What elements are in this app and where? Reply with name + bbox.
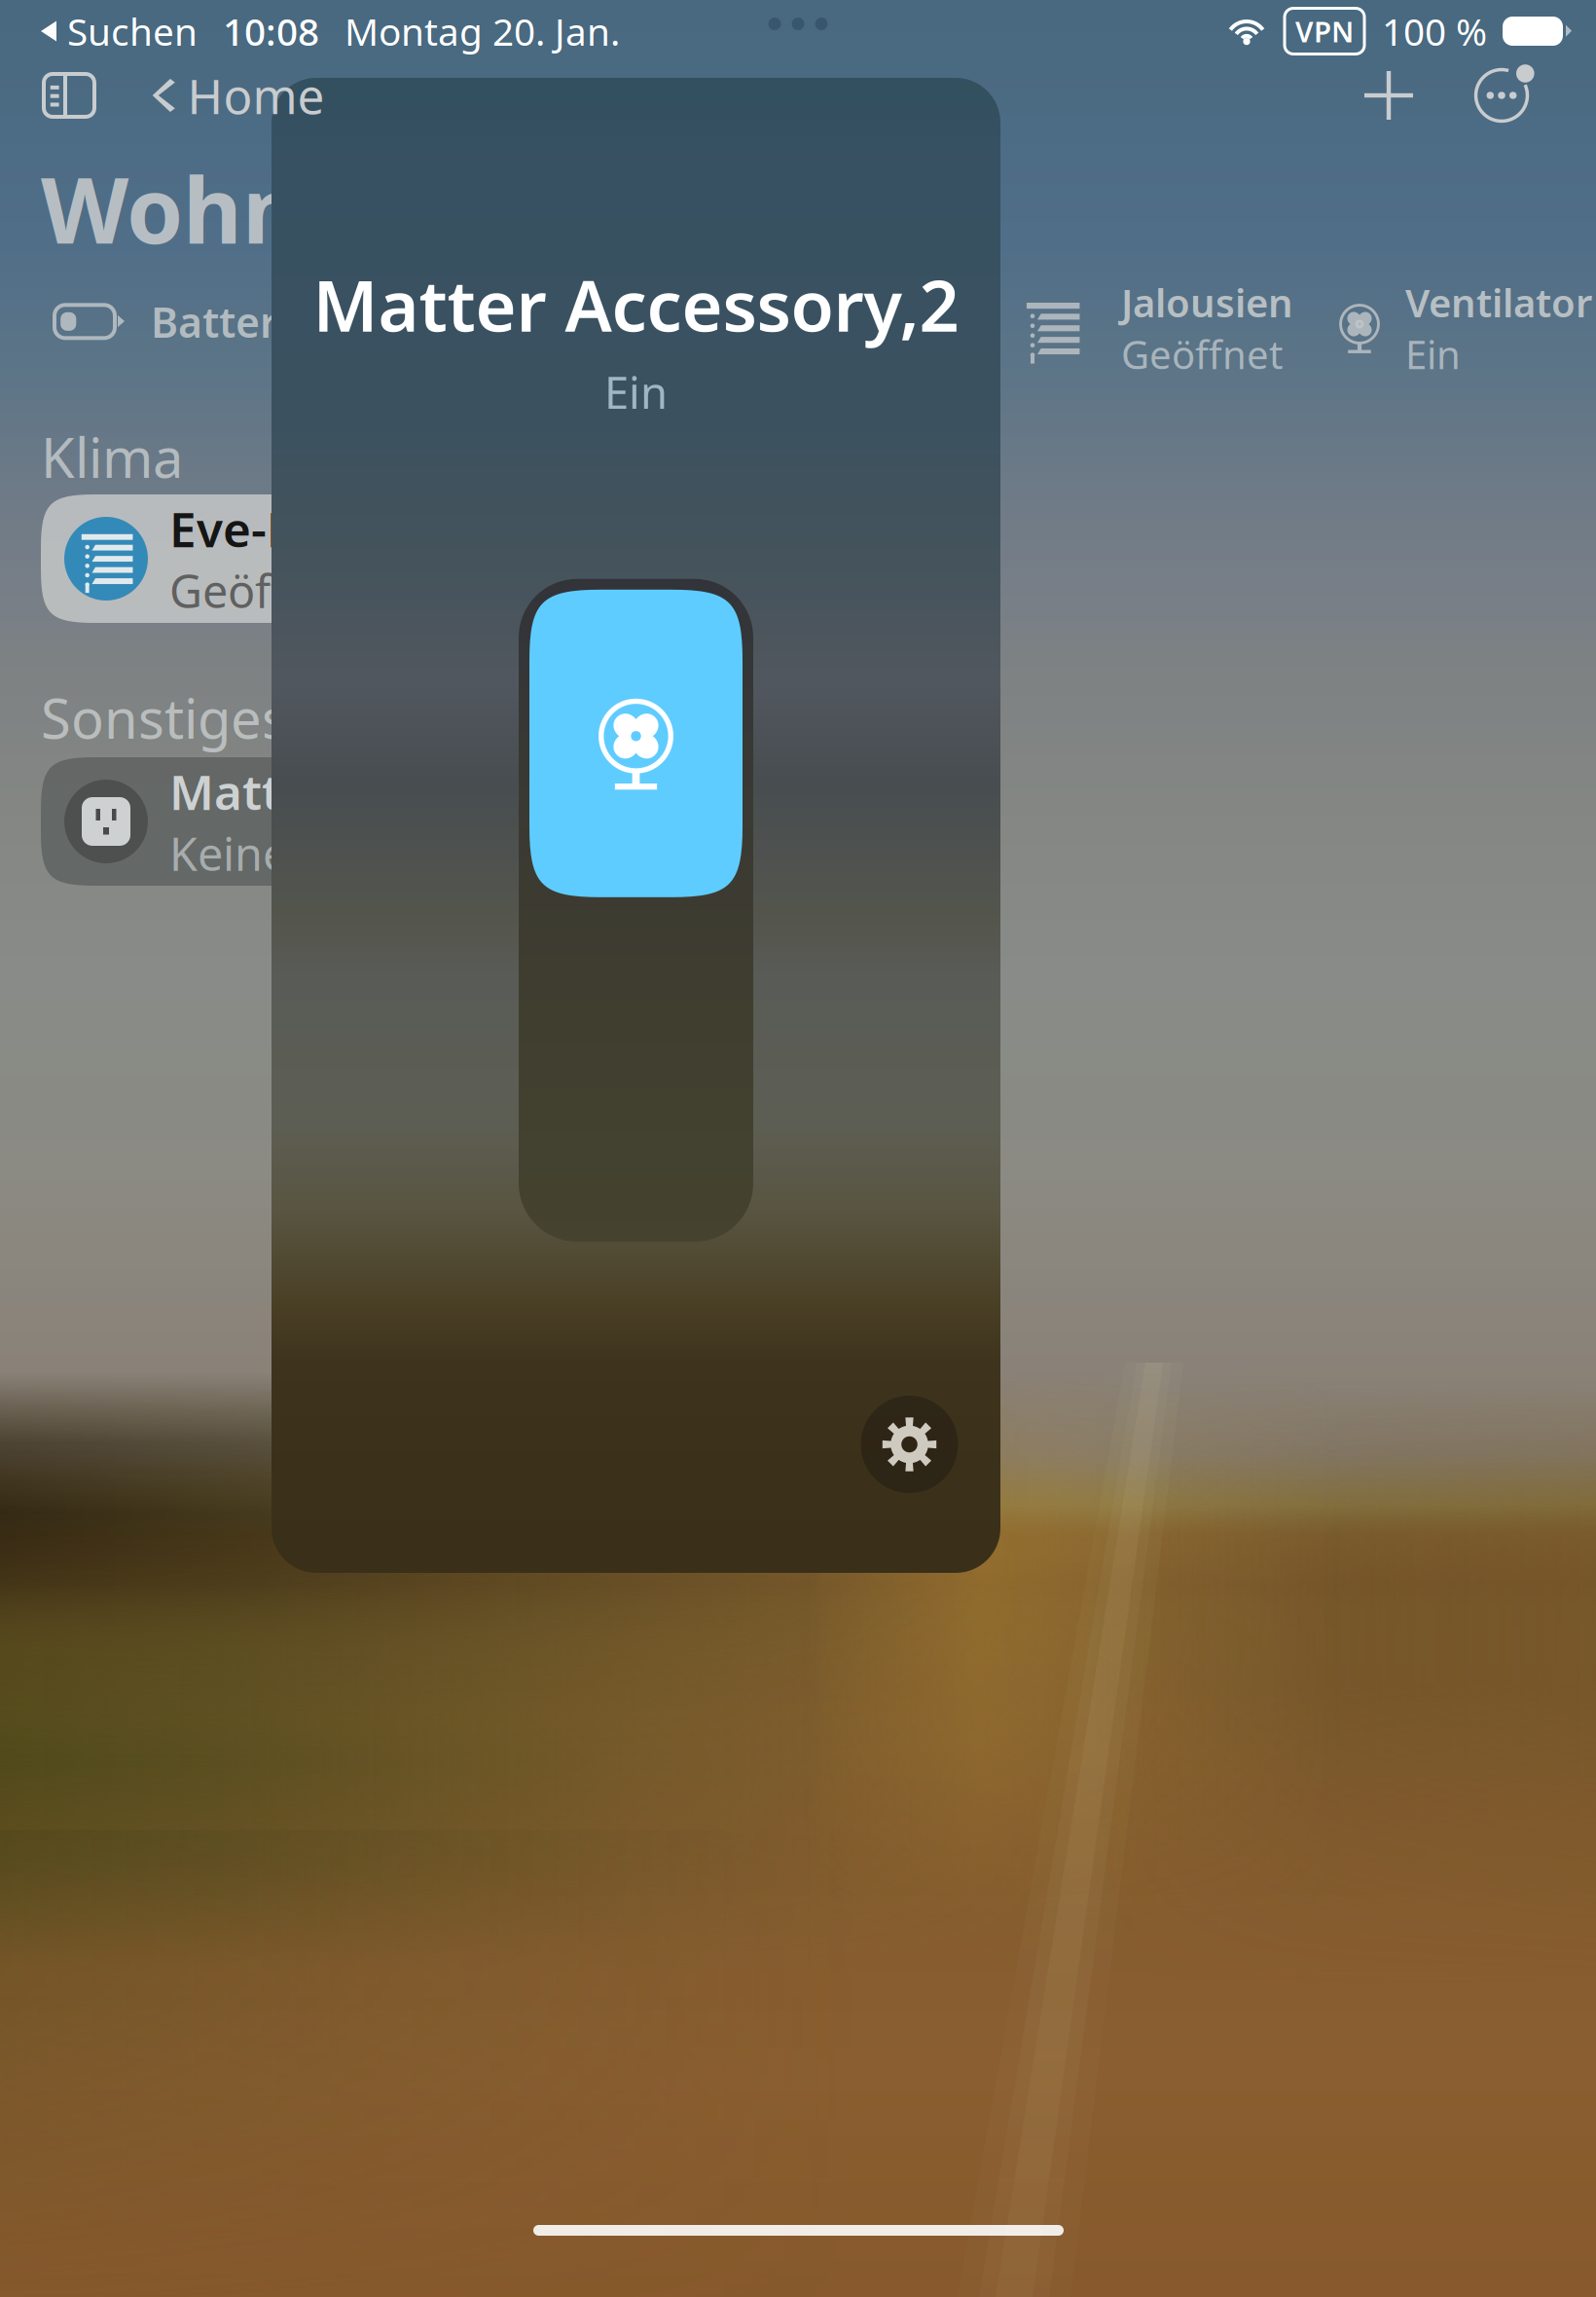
staticText: Sonstiges [41,681,288,754]
staticText: Ventilator [1405,276,1592,328]
staticText: Matter Accessory [169,759,469,823]
staticText: VPN [1295,12,1354,50]
staticText: Matter Accessory,2 [313,258,959,351]
staticText: 100 % [1382,6,1487,56]
staticText: Home [187,63,325,127]
button[interactable]: More [1469,57,1545,133]
staticText: Ein [604,363,668,421]
staticText: Montag 20. Jan. [345,6,620,56]
button[interactable]: Matter Accessory [41,757,498,886]
staticText: Suchen [67,6,198,56]
staticText: 10:08 [223,6,319,56]
staticText: Jalousien [1121,276,1293,328]
button[interactable]: Eve-Rollo [41,494,498,623]
staticText: Geöffnet [1121,328,1283,380]
button[interactable]: Add [1351,57,1427,133]
staticText: Batterie fast leer [151,294,491,349]
staticText: Eve-Rollo [169,497,383,560]
staticText: Geöffnet [169,560,356,621]
button[interactable]: Sidebar [31,57,107,133]
staticText: Klima [41,420,183,493]
staticText: Ein [1405,328,1461,380]
button[interactable]: Settings [861,1396,958,1493]
button[interactable]: Home [152,57,325,133]
staticText: Wohnzimmer [41,148,646,269]
staticText: Keine Antwort [169,823,469,884]
